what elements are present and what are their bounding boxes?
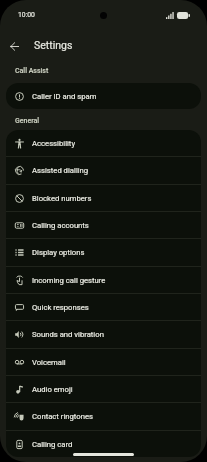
staticText: Display options xyxy=(32,248,85,257)
staticText: Settings xyxy=(34,39,73,51)
staticText: Caller ID and spam xyxy=(32,92,97,101)
staticText: 10:00 xyxy=(18,11,35,19)
staticText: Audio emoji xyxy=(32,385,73,394)
button[interactable]: General xyxy=(15,117,40,125)
button[interactable]: Back xyxy=(2,34,26,58)
staticText: Quick responses xyxy=(32,303,89,312)
button[interactable]: Calling card xyxy=(6,431,201,457)
button[interactable]: Blocked numbers xyxy=(6,185,201,211)
button[interactable]: Display options xyxy=(6,239,201,266)
staticText: Assisted dialling xyxy=(32,166,89,175)
button[interactable]: Voicemail xyxy=(6,349,201,375)
button[interactable]: Assisted dialling xyxy=(6,157,201,184)
staticText: Blocked numbers xyxy=(32,194,92,203)
staticText: Voicemail xyxy=(32,358,66,367)
button[interactable]: Caller ID and spam xyxy=(6,83,201,109)
button[interactable]: Sounds and vibration xyxy=(6,321,201,348)
staticText: Sounds and vibration xyxy=(32,330,104,339)
staticText: Calling accounts xyxy=(32,221,89,230)
button[interactable]: Calling accounts xyxy=(6,212,201,238)
button[interactable]: Accessibility xyxy=(6,130,201,156)
staticText: Calling card xyxy=(32,440,73,449)
staticText: Incoming call gesture xyxy=(32,276,106,285)
button[interactable]: Contact ringtones xyxy=(6,403,201,430)
button[interactable]: Incoming call gesture xyxy=(6,267,201,293)
button[interactable]: Audio emoji xyxy=(6,376,201,402)
button[interactable]: Call Assist xyxy=(15,67,49,75)
staticText: Accessibility xyxy=(32,139,76,148)
staticText: Contact ringtones xyxy=(32,412,93,421)
button[interactable]: Quick responses xyxy=(6,294,201,320)
